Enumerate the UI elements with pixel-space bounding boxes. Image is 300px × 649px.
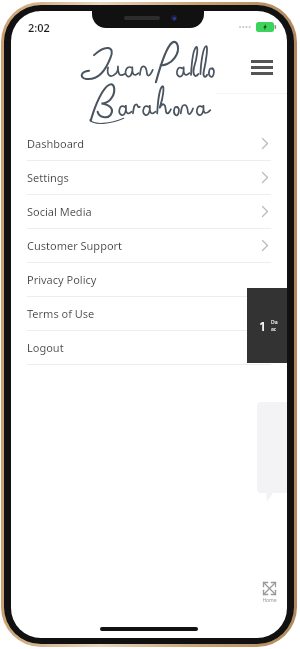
button[interactable]: Home — [257, 576, 282, 608]
button[interactable]: Privacy Policy — [11, 263, 287, 296]
staticText: Social Media — [27, 204, 92, 219]
button[interactable]: 1 — [247, 288, 287, 363]
button[interactable]: Customer Support — [11, 229, 287, 262]
button[interactable]: Settings — [11, 161, 287, 194]
staticText: Customer Support — [27, 238, 123, 253]
staticText: 2:02 — [28, 20, 50, 35]
staticText: ac — [271, 326, 277, 333]
button[interactable]: Logout — [11, 331, 287, 364]
staticText: Logout — [27, 340, 64, 355]
button[interactable]: Social Media — [11, 195, 287, 228]
button[interactable]: Terms of Use — [11, 297, 287, 330]
staticText: Privacy Policy — [27, 272, 97, 287]
staticText: Settings — [27, 170, 69, 185]
staticText: Dashboard — [27, 136, 84, 151]
staticText: Da — [271, 319, 278, 326]
button[interactable]: Menu — [245, 54, 279, 81]
staticText: Home — [262, 597, 277, 604]
staticText: 1 — [259, 317, 267, 335]
button[interactable]: Dashboard — [11, 127, 287, 160]
staticText: Terms of Use — [27, 306, 95, 321]
